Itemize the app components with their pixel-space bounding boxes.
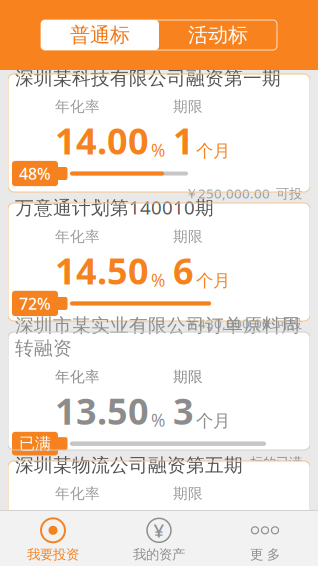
- staticText: 1: [173, 117, 194, 164]
- staticText: 标的已满: [250, 455, 302, 471]
- staticText: 72%: [19, 293, 51, 314]
- staticText: 期限: [173, 228, 203, 246]
- staticText: %: [151, 268, 165, 291]
- button[interactable]: ¥: [106, 517, 212, 563]
- staticText: 普通标: [70, 23, 130, 47]
- staticText: 14.50: [55, 247, 149, 294]
- staticText: ￥430,000.00 可投: [185, 314, 302, 332]
- button[interactable]: 深圳某物流公司融资第五期: [8, 461, 310, 566]
- staticText: %: [151, 138, 165, 161]
- staticText: 个月: [196, 140, 230, 161]
- staticText: 期限: [173, 368, 203, 386]
- staticText: 6: [173, 247, 194, 294]
- staticText: 期限: [173, 485, 203, 503]
- staticText: ￥250,000.00 可投: [185, 184, 302, 202]
- staticText: 深圳某科技有限公司融资第一期: [15, 67, 281, 90]
- staticText: 15.00: [55, 504, 149, 551]
- staticText: %: [151, 409, 165, 432]
- staticText: 年化率: [55, 228, 100, 246]
- button[interactable]: 深圳某科技有限公司融资第一期: [8, 74, 310, 192]
- button[interactable]: 深圳市某实业有限公司订单原料周转融资: [8, 332, 310, 450]
- staticText: 年化率: [55, 98, 100, 116]
- staticText: 活动标: [188, 23, 248, 47]
- staticText: 万意通计划第140010期: [15, 195, 214, 220]
- staticText: 我的资产: [133, 546, 185, 563]
- staticText: 我要投资: [27, 546, 79, 563]
- staticText: 更 多: [250, 546, 280, 563]
- staticText: 深圳市某实业有限公司订单原料周转融资: [15, 314, 300, 360]
- staticText: 13.50: [55, 387, 149, 435]
- button[interactable]: 普通标: [41, 20, 159, 50]
- staticText: 已满: [19, 434, 51, 453]
- staticText: 14.00: [55, 117, 149, 164]
- staticText: 年化率: [55, 485, 100, 503]
- staticText: 3: [173, 387, 194, 435]
- button[interactable]: 活动标: [159, 20, 277, 50]
- staticText: 个月: [196, 410, 230, 432]
- staticText: %: [151, 525, 165, 548]
- button[interactable]: 万意通计划第140010期: [8, 203, 310, 321]
- staticText: 2: [173, 504, 194, 551]
- staticText: 30%: [19, 550, 51, 566]
- staticText: ¥: [153, 518, 164, 543]
- staticText: 个月: [196, 270, 230, 291]
- staticText: 期限: [173, 98, 203, 116]
- staticText: 深圳某物流公司融资第五期: [15, 454, 243, 477]
- button[interactable]: 更 多: [212, 517, 318, 563]
- staticText: 年化率: [55, 368, 100, 386]
- staticText: 48%: [19, 163, 51, 184]
- button[interactable]: 我要投资: [0, 517, 106, 563]
